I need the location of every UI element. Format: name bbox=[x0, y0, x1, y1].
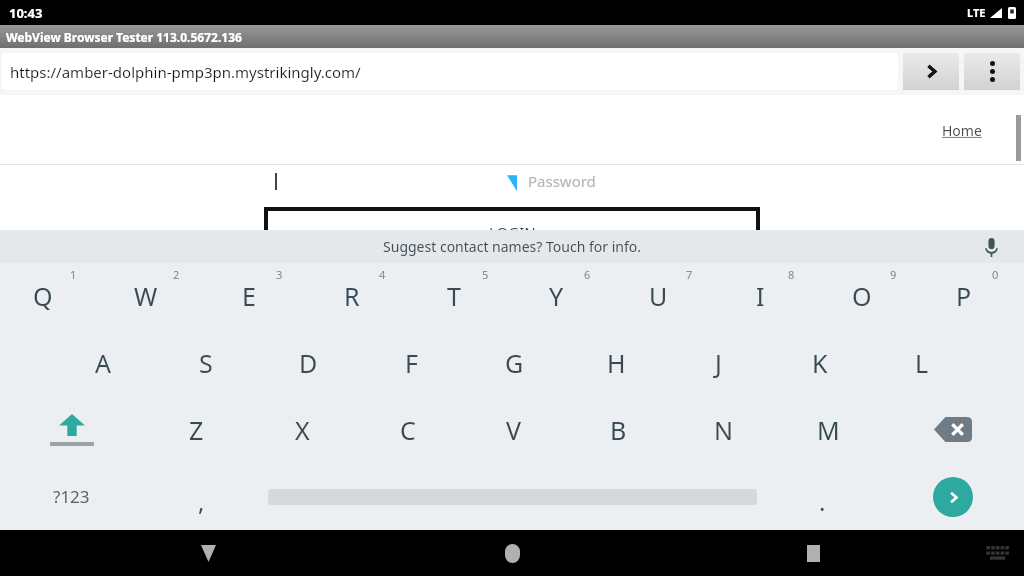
button[interactable]: W bbox=[103, 263, 206, 329]
staticText: 5 bbox=[482, 267, 489, 282]
button[interactable]: G bbox=[463, 329, 565, 396]
button[interactable]: Y bbox=[514, 263, 616, 329]
button[interactable]: N bbox=[671, 396, 776, 463]
staticText: N bbox=[714, 413, 734, 447]
staticText: G bbox=[505, 346, 524, 380]
button[interactable]: X bbox=[249, 396, 355, 463]
button[interactable]: B bbox=[566, 396, 671, 463]
staticText: E bbox=[242, 279, 256, 313]
staticText: https://amber-dolphin-pmp3pn.mystrikingl… bbox=[10, 62, 361, 82]
staticText: T bbox=[447, 279, 461, 313]
button[interactable]: Q bbox=[0, 263, 103, 329]
button[interactable]: S bbox=[154, 329, 257, 396]
staticText: X bbox=[295, 413, 310, 447]
button[interactable]: Home bbox=[942, 121, 982, 140]
staticText: V bbox=[506, 413, 522, 447]
button[interactable]: T bbox=[412, 263, 514, 329]
button[interactable]: Backspace bbox=[881, 396, 1024, 463]
staticText: . bbox=[819, 485, 826, 518]
button[interactable]: V bbox=[461, 396, 566, 463]
staticText: D bbox=[299, 346, 318, 380]
staticText: 9 bbox=[890, 267, 897, 282]
staticText: 1 bbox=[70, 267, 77, 282]
button[interactable]: L bbox=[871, 329, 973, 396]
staticText: M bbox=[817, 413, 840, 447]
button[interactable]: Password bbox=[517, 165, 758, 197]
staticText: 4 bbox=[379, 267, 386, 282]
staticText: 3 bbox=[276, 267, 283, 282]
button[interactable]: O bbox=[820, 263, 922, 329]
button[interactable]: C bbox=[355, 396, 461, 463]
button[interactable]: Go bbox=[903, 53, 959, 90]
button[interactable] bbox=[267, 165, 507, 197]
staticText: S bbox=[199, 346, 213, 380]
staticText: WebView Browser Tester 113.0.5672.136 bbox=[6, 29, 242, 45]
staticText: I bbox=[756, 279, 765, 313]
staticText: 7 bbox=[686, 267, 693, 282]
staticText: 10:43 bbox=[9, 4, 43, 22]
button[interactable]: ?123 bbox=[0, 463, 143, 530]
button[interactable]: F bbox=[360, 329, 463, 396]
button[interactable]: Shift bbox=[0, 396, 143, 463]
staticText: ?123 bbox=[53, 485, 90, 508]
button[interactable]: M bbox=[776, 396, 881, 463]
button[interactable]: E bbox=[206, 263, 309, 329]
staticText: Q bbox=[33, 279, 53, 313]
staticText: 8 bbox=[788, 267, 795, 282]
button[interactable]: Recent apps bbox=[791, 531, 835, 575]
staticText: C bbox=[400, 413, 416, 447]
button[interactable]: Enter bbox=[881, 463, 1024, 530]
staticText: 0 bbox=[992, 267, 999, 282]
button[interactable]: R bbox=[309, 263, 412, 329]
button[interactable]: P bbox=[922, 263, 1024, 329]
staticText: O bbox=[852, 279, 872, 313]
staticText: , bbox=[198, 485, 205, 518]
staticText: Password bbox=[528, 171, 596, 191]
staticText: P bbox=[956, 279, 972, 313]
staticText: F bbox=[405, 346, 418, 380]
staticText: W bbox=[134, 279, 158, 313]
staticText: L bbox=[915, 346, 929, 380]
button[interactable]: , bbox=[143, 463, 260, 530]
button[interactable]: Back bbox=[186, 531, 230, 575]
staticText: Z bbox=[189, 413, 204, 447]
staticText: R bbox=[344, 279, 360, 313]
button[interactable]: H bbox=[565, 329, 667, 396]
button[interactable]: https://amber-dolphin-pmp3pn.mystrikingl… bbox=[2, 53, 898, 90]
staticText: H bbox=[607, 346, 626, 380]
button[interactable]: A bbox=[51, 329, 154, 396]
staticText: 2 bbox=[173, 267, 180, 282]
button[interactable]: J bbox=[667, 329, 769, 396]
button[interactable]: D bbox=[257, 329, 360, 396]
staticText: LOGIN bbox=[489, 222, 536, 242]
button[interactable]: More options bbox=[964, 53, 1020, 90]
button[interactable]: Voice input bbox=[976, 232, 1006, 262]
button[interactable]: . bbox=[764, 463, 881, 530]
staticText: B bbox=[610, 413, 627, 447]
staticText: 6 bbox=[584, 267, 591, 282]
button[interactable]: Suggest contact names? Touch for info. bbox=[0, 230, 1024, 263]
button[interactable]: Home bbox=[490, 531, 534, 575]
button[interactable]: I bbox=[718, 263, 820, 329]
staticText: U bbox=[649, 279, 668, 313]
button[interactable]: LOGIN bbox=[266, 209, 758, 255]
staticText: A bbox=[95, 346, 111, 380]
staticText: Y bbox=[549, 279, 564, 313]
button[interactable]: Space bbox=[260, 463, 764, 530]
staticText: LTE bbox=[967, 5, 986, 20]
button[interactable]: Z bbox=[143, 396, 249, 463]
staticText: J bbox=[715, 346, 722, 380]
staticText: K bbox=[812, 346, 828, 380]
staticText: Suggest contact names? Touch for info. bbox=[383, 237, 641, 256]
button[interactable]: K bbox=[769, 329, 871, 396]
button[interactable]: U bbox=[616, 263, 718, 329]
button[interactable]: Switch keyboard bbox=[981, 536, 1015, 570]
